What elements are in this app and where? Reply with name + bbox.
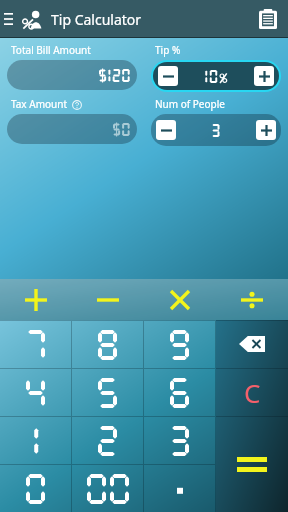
button[interactable] [144, 417, 215, 464]
button[interactable] [7, 60, 137, 90]
button[interactable]: Increase [254, 66, 274, 86]
button[interactable]: - [72, 279, 144, 320]
button[interactable] [144, 321, 215, 368]
staticText: Tax Amount [11, 97, 68, 111]
button[interactable] [0, 321, 71, 368]
button[interactable] [0, 369, 71, 416]
staticText: Num of People [155, 97, 225, 111]
button[interactable] [72, 369, 143, 416]
button[interactable] [144, 465, 215, 512]
button[interactable]: Backspace [216, 320, 288, 368]
button[interactable]: Increase [256, 120, 276, 140]
button[interactable]: Decrease [158, 66, 178, 86]
staticText: C [244, 375, 261, 410]
button[interactable]: Notes [248, 0, 288, 38]
button[interactable] [7, 114, 137, 144]
staticText: Total Bill Amount [11, 43, 91, 57]
button[interactable]: Equals [216, 416, 288, 512]
button[interactable] [72, 321, 143, 368]
button[interactable] [0, 465, 71, 512]
button[interactable]: Decrease [156, 120, 176, 140]
button[interactable]: C [216, 368, 288, 416]
button[interactable]: Help [71, 99, 82, 110]
staticText: Tip Calculator [51, 10, 142, 29]
button[interactable]: + [0, 279, 72, 320]
button[interactable] [72, 465, 143, 512]
button[interactable]: Menu [0, 0, 16, 38]
button[interactable] [0, 417, 71, 464]
staticText: Tip % [155, 43, 181, 57]
button[interactable] [72, 417, 143, 464]
button[interactable]: / [216, 279, 288, 320]
button[interactable]: x [144, 279, 216, 320]
button[interactable] [144, 369, 215, 416]
